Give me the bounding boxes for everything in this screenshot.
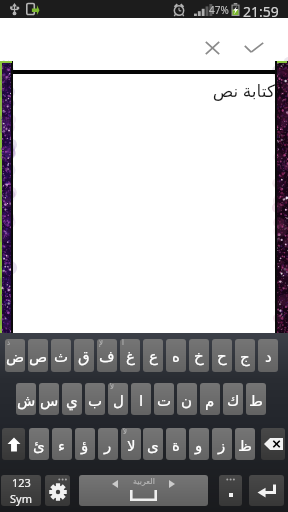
staticText: ه — [172, 348, 180, 365]
staticText: ؤ — [81, 437, 89, 454]
staticText: ي — [66, 392, 78, 409]
button[interactable]: ؤ — [75, 428, 95, 460]
staticText: ى — [147, 437, 159, 454]
button[interactable]: لأ — [108, 383, 128, 415]
button[interactable]: ئ — [29, 428, 49, 460]
button[interactable]: ط — [246, 383, 266, 415]
staticText: د — [265, 348, 272, 365]
staticText: ش — [17, 392, 36, 409]
staticText: أ — [122, 339, 124, 347]
staticText: لآ — [123, 428, 127, 436]
button[interactable]: أ — [120, 339, 140, 372]
button[interactable]: ب — [85, 383, 105, 415]
staticText: خ — [194, 348, 204, 365]
staticText: ج — [240, 348, 250, 365]
staticText: ح — [217, 348, 227, 365]
staticText: ث — [54, 348, 69, 365]
staticText: ظ — [238, 437, 252, 454]
button[interactable]: ي — [62, 383, 82, 415]
button[interactable]: ى — [143, 428, 163, 460]
button[interactable]: Settings — [45, 475, 70, 506]
button[interactable]: ع — [143, 339, 163, 372]
staticText: ا — [139, 392, 144, 409]
button[interactable]: ظ — [235, 428, 255, 460]
staticText: ت — [157, 392, 172, 409]
staticText: ء — [58, 437, 66, 454]
button[interactable]: ج — [235, 339, 255, 372]
button[interactable]: س — [39, 383, 59, 415]
button[interactable]: ه — [166, 339, 186, 372]
button[interactable]: ة — [166, 428, 186, 460]
staticText: لا — [127, 437, 136, 454]
button[interactable]: لإ — [97, 339, 117, 372]
staticText: ذ — [7, 339, 11, 347]
staticText: و — [195, 437, 203, 454]
button[interactable]: م — [200, 383, 220, 415]
staticText: س — [40, 392, 59, 409]
staticText: غ — [126, 348, 135, 365]
button[interactable]: ص — [28, 339, 48, 372]
button[interactable]: ك — [223, 383, 243, 415]
staticText: ق — [78, 348, 90, 365]
staticText: العربية — [133, 477, 155, 486]
staticText: كتابة نص — [150, 79, 275, 102]
button[interactable]: ء — [52, 428, 72, 460]
staticText: ط — [249, 392, 263, 409]
button[interactable]: و — [189, 428, 209, 460]
button[interactable]: Space — [79, 475, 208, 506]
staticText: م — [205, 392, 215, 409]
staticText: ئ — [33, 437, 45, 454]
button[interactable]: د — [258, 339, 278, 372]
button[interactable]: ت — [154, 383, 174, 415]
button[interactable]: Symbols — [1, 475, 41, 506]
button[interactable]: Enter — [249, 475, 284, 506]
staticText: ف — [99, 348, 115, 365]
button[interactable]: خ — [189, 339, 209, 372]
staticText: ع — [149, 348, 158, 365]
button[interactable]: ق — [74, 339, 94, 372]
staticText: ل — [113, 392, 124, 409]
button[interactable]: ز — [212, 428, 232, 460]
staticText: ص — [29, 348, 48, 365]
staticText: ة — [172, 437, 180, 454]
button[interactable]: Cancel — [192, 31, 233, 64]
button[interactable]: Backspace — [261, 428, 285, 460]
staticText: لإ — [99, 339, 103, 347]
staticText: ك — [227, 392, 240, 409]
staticText: Sym — [10, 491, 32, 506]
button[interactable]: ر — [98, 428, 118, 460]
staticText: ض — [6, 348, 25, 365]
button[interactable]: Done — [233, 31, 274, 64]
button[interactable]: لآ — [121, 428, 141, 460]
staticText: لأ — [110, 383, 114, 391]
button[interactable]: ش — [16, 383, 36, 415]
button[interactable]: ح — [212, 339, 232, 372]
button[interactable]: Period — [219, 475, 242, 506]
button[interactable]: ا — [131, 383, 151, 415]
button[interactable]: ن — [177, 383, 197, 415]
staticText: 47% — [209, 3, 229, 17]
staticText: ب — [88, 392, 103, 409]
staticText: 123 — [12, 475, 31, 490]
button[interactable]: ث — [51, 339, 71, 372]
button[interactable]: Shift — [2, 428, 25, 460]
staticText: ن — [181, 392, 193, 409]
staticText: ز — [218, 437, 226, 454]
button[interactable]: ذ — [5, 339, 25, 372]
staticText: 21:59 — [243, 2, 279, 20]
staticText: ر — [104, 437, 112, 454]
